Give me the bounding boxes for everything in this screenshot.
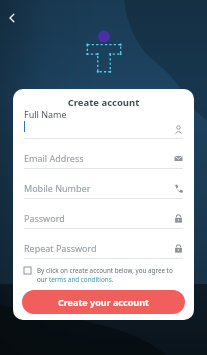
staticText: Repeat Password [24,242,97,254]
button[interactable]: Password [13,199,194,229]
button[interactable]: Mobile Number [13,169,194,199]
staticText: By click on create account below, you ag… [37,266,183,284]
button[interactable]: Full Name [13,109,194,139]
staticText: Password [24,212,65,224]
staticText: Create account [13,96,194,109]
staticText: Full Name [24,108,67,120]
button[interactable]: Email Address [13,139,194,169]
staticText: Email Address [24,152,84,164]
button[interactable]: Back [4,10,20,26]
button[interactable]: Create your account [22,290,185,314]
staticText: Mobile Number [24,182,91,194]
button[interactable]: By click on create account below, you ag… [24,266,183,284]
staticText: Create your account [58,296,149,308]
button[interactable]: Repeat Password [13,229,194,259]
